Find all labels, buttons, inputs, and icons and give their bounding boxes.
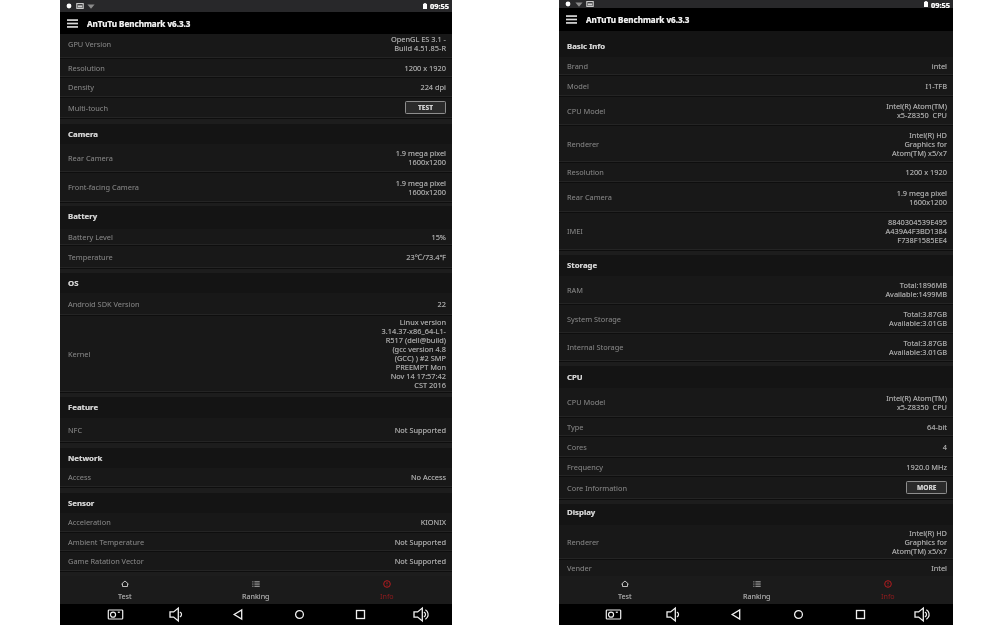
staticText: GPU Version (68, 39, 112, 49)
staticText: Network (68, 453, 103, 464)
staticText: Renderer (567, 139, 600, 149)
staticText: CPU (567, 372, 583, 383)
staticText: 09:55 (931, 0, 950, 8)
staticText: Temperature (68, 252, 113, 262)
staticText: KIONIX (420, 517, 446, 527)
button[interactable]: Info (321, 576, 452, 604)
button[interactable]: Resolution (567, 163, 947, 181)
button[interactable]: IMEI (567, 213, 947, 249)
staticText: Storage (567, 260, 598, 271)
staticText: Info (380, 591, 394, 601)
button[interactable]: Home (767, 604, 829, 625)
staticText: 1.9 mega pixel 1600x1200 (395, 148, 446, 167)
button[interactable]: Acceleration (68, 513, 446, 531)
staticText: Not Supported (394, 537, 446, 547)
button[interactable]: Resolution (68, 59, 446, 76)
staticText: Intel (931, 563, 947, 573)
staticText: 1920.0 MHz (906, 462, 947, 472)
button[interactable]: Back (208, 604, 269, 625)
staticText: NFC (68, 425, 83, 435)
button[interactable]: Open navigation menu (562, 8, 580, 31)
button[interactable]: TEST (405, 101, 446, 114)
staticText: Info (881, 591, 895, 601)
staticText: Access (68, 472, 92, 482)
button[interactable]: Ambient Temperature (68, 533, 446, 550)
button[interactable]: Info (822, 576, 953, 604)
button[interactable]: MORE (906, 481, 947, 494)
button[interactable]: Volume up (391, 604, 452, 625)
staticText: Resolution (567, 167, 604, 177)
button[interactable]: Brand (567, 57, 947, 74)
staticText: Ambient Temperature (68, 537, 145, 547)
button[interactable]: Screenshot (583, 604, 644, 625)
button[interactable]: GPU Version (68, 34, 446, 57)
staticText: Battery Level (68, 232, 113, 242)
staticText: Total:1896MB Available:1499MB (885, 280, 947, 299)
button[interactable]: Volume down (644, 604, 705, 625)
button[interactable]: Open navigation menu (63, 12, 81, 34)
staticText: 23℃/73.4℉ (406, 252, 446, 262)
button[interactable]: Vender (567, 560, 947, 576)
staticText: Intel(R) Atom(TM) x5-Z8350 CPU (886, 101, 947, 120)
button[interactable]: CPU Model (567, 97, 947, 124)
button[interactable]: Ranking (190, 576, 321, 604)
button[interactable]: NFC (68, 418, 446, 441)
staticText: OS (68, 278, 79, 289)
button[interactable]: Renderer (567, 126, 947, 161)
staticText: Not Supported (394, 556, 446, 566)
staticText: Feature (68, 402, 99, 413)
staticText: AnTuTu Benchmark v6.3.3 (87, 18, 191, 29)
staticText: Ranking (242, 591, 270, 601)
button[interactable]: Volume up (891, 604, 953, 625)
button[interactable]: Rear Camera (68, 144, 446, 171)
button[interactable]: Cores (567, 437, 947, 456)
button[interactable]: Game Ratation Vector (68, 552, 446, 570)
staticText: I1-TFB (925, 81, 947, 91)
button[interactable]: Temperature (68, 246, 446, 267)
staticText: Cores (567, 442, 587, 452)
staticText: Rear Camera (68, 153, 113, 163)
button[interactable]: Back (705, 604, 767, 625)
button[interactable]: Renderer (567, 525, 947, 558)
staticText: TEST (418, 103, 433, 112)
staticText: Multi-touch (68, 103, 108, 113)
button[interactable]: Ranking (691, 576, 822, 604)
staticText: Not Supported (394, 425, 446, 435)
staticText: 64-bit (927, 422, 947, 432)
button[interactable]: Recent apps (829, 604, 891, 625)
button[interactable]: Volume down (146, 604, 208, 625)
staticText: CPU Model (567, 397, 606, 407)
button[interactable]: Type (567, 418, 947, 435)
button[interactable]: Access (68, 468, 446, 486)
staticText: Front-facing Camera (68, 182, 139, 192)
staticText: Intel(R) HD Graphics for Atom(TM) x5/x7 (892, 130, 947, 158)
button[interactable]: Model (567, 76, 947, 95)
staticText: 09:55 (430, 1, 449, 11)
staticText: Camera (68, 129, 98, 140)
button[interactable]: Android SDK Version (68, 293, 446, 314)
staticText: Internal Storage (567, 342, 624, 352)
button[interactable]: Front-facing Camera (68, 173, 446, 201)
staticText: Acceleration (68, 517, 111, 527)
button[interactable]: Battery Level (68, 229, 446, 244)
button[interactable]: CPU Model (567, 388, 947, 416)
button[interactable]: Frequency (567, 458, 947, 475)
staticText: Battery (68, 211, 98, 222)
button[interactable]: System Storage (567, 305, 947, 332)
staticText: Android SDK Version (68, 299, 140, 309)
button[interactable]: Kernel (68, 316, 446, 391)
staticText: Test (618, 591, 632, 601)
button[interactable]: Recent apps (330, 604, 391, 625)
staticText: 8840304539E495 A439A4F3BD1384 F738F1585E… (885, 217, 947, 245)
button[interactable]: Screenshot (84, 604, 146, 625)
button[interactable]: Density (68, 78, 446, 96)
button[interactable]: Rear Camera (567, 183, 947, 211)
staticText: Total:3.87GB Available:3.01GB (888, 309, 947, 328)
button[interactable]: Home (269, 604, 330, 625)
button[interactable]: Internal Storage (567, 334, 947, 360)
button[interactable]: Test (60, 576, 190, 604)
button[interactable]: Test (559, 576, 691, 604)
staticText: 224 dpi (420, 82, 446, 92)
staticText: 1.9 mega pixel 1600x1200 (896, 188, 947, 207)
button[interactable]: RAM (567, 276, 947, 303)
